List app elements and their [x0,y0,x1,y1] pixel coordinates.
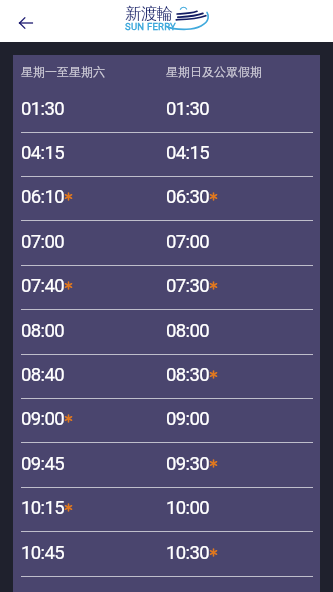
staticText: 08:40 [21,364,65,386]
button[interactable]: 07:00 [13,221,320,265]
button[interactable]: 06:10 [13,176,320,220]
button[interactable]: 10:45 [13,532,320,576]
staticText: 星期日及公眾假期 [166,64,262,79]
staticText: 07:00 [21,231,65,253]
staticText: 10:15 [21,497,65,519]
staticText: 09:45 [21,453,65,475]
staticText: 10:45 [21,542,65,564]
staticText: 09:30 [166,453,210,475]
staticText: 10:30 [166,542,210,564]
staticText: 04:15 [21,142,65,164]
button[interactable]: 10:15 [13,487,320,531]
staticText: 09:00 [21,408,65,430]
staticText: 新渡輪 [125,4,173,24]
staticText: 06:10 [21,186,65,208]
button[interactable]: 04:15 [13,132,320,176]
button[interactable]: 09:45 [13,443,320,487]
button[interactable]: 01:30 [13,88,320,132]
staticText: 06:30 [166,186,210,208]
staticText: 07:30 [166,275,210,297]
staticText: 08:00 [166,320,210,342]
button[interactable]: 07:40 [13,265,320,309]
staticText: 08:00 [21,320,65,342]
staticText: 07:00 [166,231,210,253]
button[interactable]: 08:40 [13,354,320,398]
button[interactable]: 09:00 [13,398,320,442]
staticText: 01:30 [21,98,65,120]
staticText: 08:30 [166,364,210,386]
staticText: 10:00 [166,497,210,519]
button[interactable]: 08:00 [13,310,320,354]
staticText: SUN FERRY [125,21,177,32]
staticText: 09:00 [166,408,210,430]
staticText: 07:40 [21,275,65,297]
button[interactable]: Back [0,0,50,42]
staticText: 星期一至星期六 [21,64,105,79]
staticText: 04:15 [166,142,210,164]
staticText: 01:30 [166,98,210,120]
